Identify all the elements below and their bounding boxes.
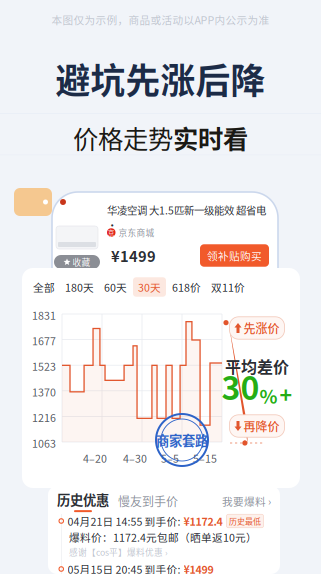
staticText: 本图仅为示例，商品或活动以APP内公示为准: [51, 12, 269, 27]
staticText: 全部: [33, 279, 55, 295]
button[interactable]: 领补贴购买: [200, 244, 269, 267]
staticText: 5–15: [193, 450, 217, 466]
staticText: 历史最低: [229, 515, 261, 527]
staticText: ¥1499: [111, 245, 156, 266]
staticText: 领补贴购买: [207, 248, 262, 263]
staticText: 4–20: [83, 450, 107, 466]
staticText: 180天: [65, 279, 94, 295]
button[interactable]: 618价: [172, 279, 201, 295]
staticText: 商家套路: [156, 430, 208, 450]
staticText: 30天: [138, 279, 161, 295]
staticText: ¥1499: [183, 561, 213, 574]
staticText: %: [259, 382, 277, 409]
staticText: 历史优惠: [57, 490, 109, 509]
staticText: 618价: [172, 279, 201, 295]
staticText: 双11价: [211, 279, 245, 295]
staticText: 60天: [104, 279, 127, 295]
staticText: 1677: [32, 333, 56, 348]
staticText: 04月21日 14:55 到手价:: [67, 513, 180, 529]
staticText: 1063: [32, 435, 56, 451]
staticText: +: [279, 378, 292, 409]
staticText: 05月15日 20:45 到手价:: [67, 561, 180, 574]
staticText: 1523: [32, 358, 56, 374]
staticText: 1831: [32, 307, 56, 323]
button[interactable]: 60天: [104, 279, 127, 295]
button[interactable]: 30天: [133, 277, 166, 297]
staticText: 感谢【cos平】爆料优惠 ›: [69, 546, 168, 558]
staticText: 爆料价：1172.4元包邮（晒单返10元）: [69, 529, 257, 545]
button[interactable]: 慢友到手价: [118, 492, 178, 510]
staticText: 京东商城: [118, 226, 154, 239]
staticText: ¥1172.4: [183, 513, 222, 529]
staticText: 1370: [32, 384, 56, 399]
staticText: 慢友到手价: [118, 492, 178, 510]
button[interactable]: 双11价: [211, 279, 245, 295]
staticText: 收藏: [72, 256, 90, 268]
staticText: 再降价: [243, 417, 279, 435]
staticText: 先涨价: [243, 319, 279, 337]
staticText: 4–30: [123, 450, 147, 466]
button[interactable]: 历史优惠: [57, 490, 109, 512]
staticText: 5–5: [161, 450, 179, 466]
button[interactable]: 180天: [65, 279, 94, 295]
button[interactable]: 我要爆料 ›: [222, 493, 271, 509]
staticText: 京: [108, 228, 115, 237]
staticText: 华凌空调 大1.5匹新一级能效 超省电·: [107, 202, 266, 232]
staticText: 价格走势实时看: [73, 120, 248, 156]
staticText: 平均差价: [225, 354, 289, 378]
staticText: 避坑先涨后降: [55, 53, 265, 104]
staticText: 30: [221, 363, 259, 409]
button[interactable]: 全部: [33, 279, 55, 295]
staticText: 我要爆料 ›: [222, 493, 271, 509]
staticText: 1216: [32, 410, 56, 425]
button[interactable]: 收藏: [54, 255, 100, 269]
